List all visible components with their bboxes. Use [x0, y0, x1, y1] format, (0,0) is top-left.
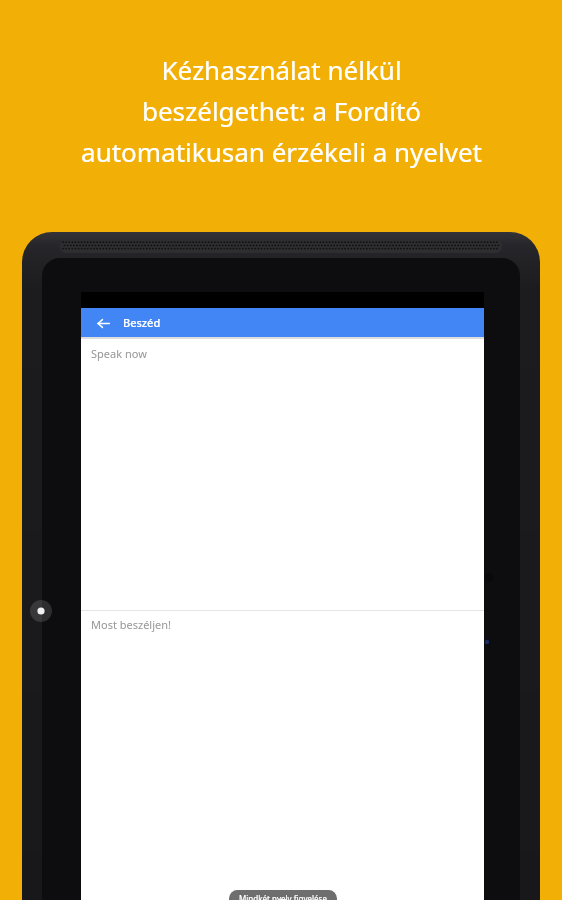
button[interactable]: Speak now — [81, 339, 484, 610]
button[interactable]: Listen with microphone — [269, 899, 297, 900]
staticText: Beszéd — [123, 315, 161, 330]
staticText: Kézhasználat nélkül beszélgethet: a Ford… — [81, 52, 482, 170]
button[interactable]: Back — [81, 308, 484, 337]
staticText: Most beszéljen! — [91, 617, 171, 632]
button[interactable]: Mindkét nyelv figyelése — [239, 893, 327, 900]
button[interactable]: Most beszéljen! — [81, 611, 484, 900]
staticText: Mindkét nyelv figyelése — [239, 893, 327, 900]
button[interactable]: Back — [93, 313, 113, 333]
staticText: Speak now — [91, 346, 147, 361]
